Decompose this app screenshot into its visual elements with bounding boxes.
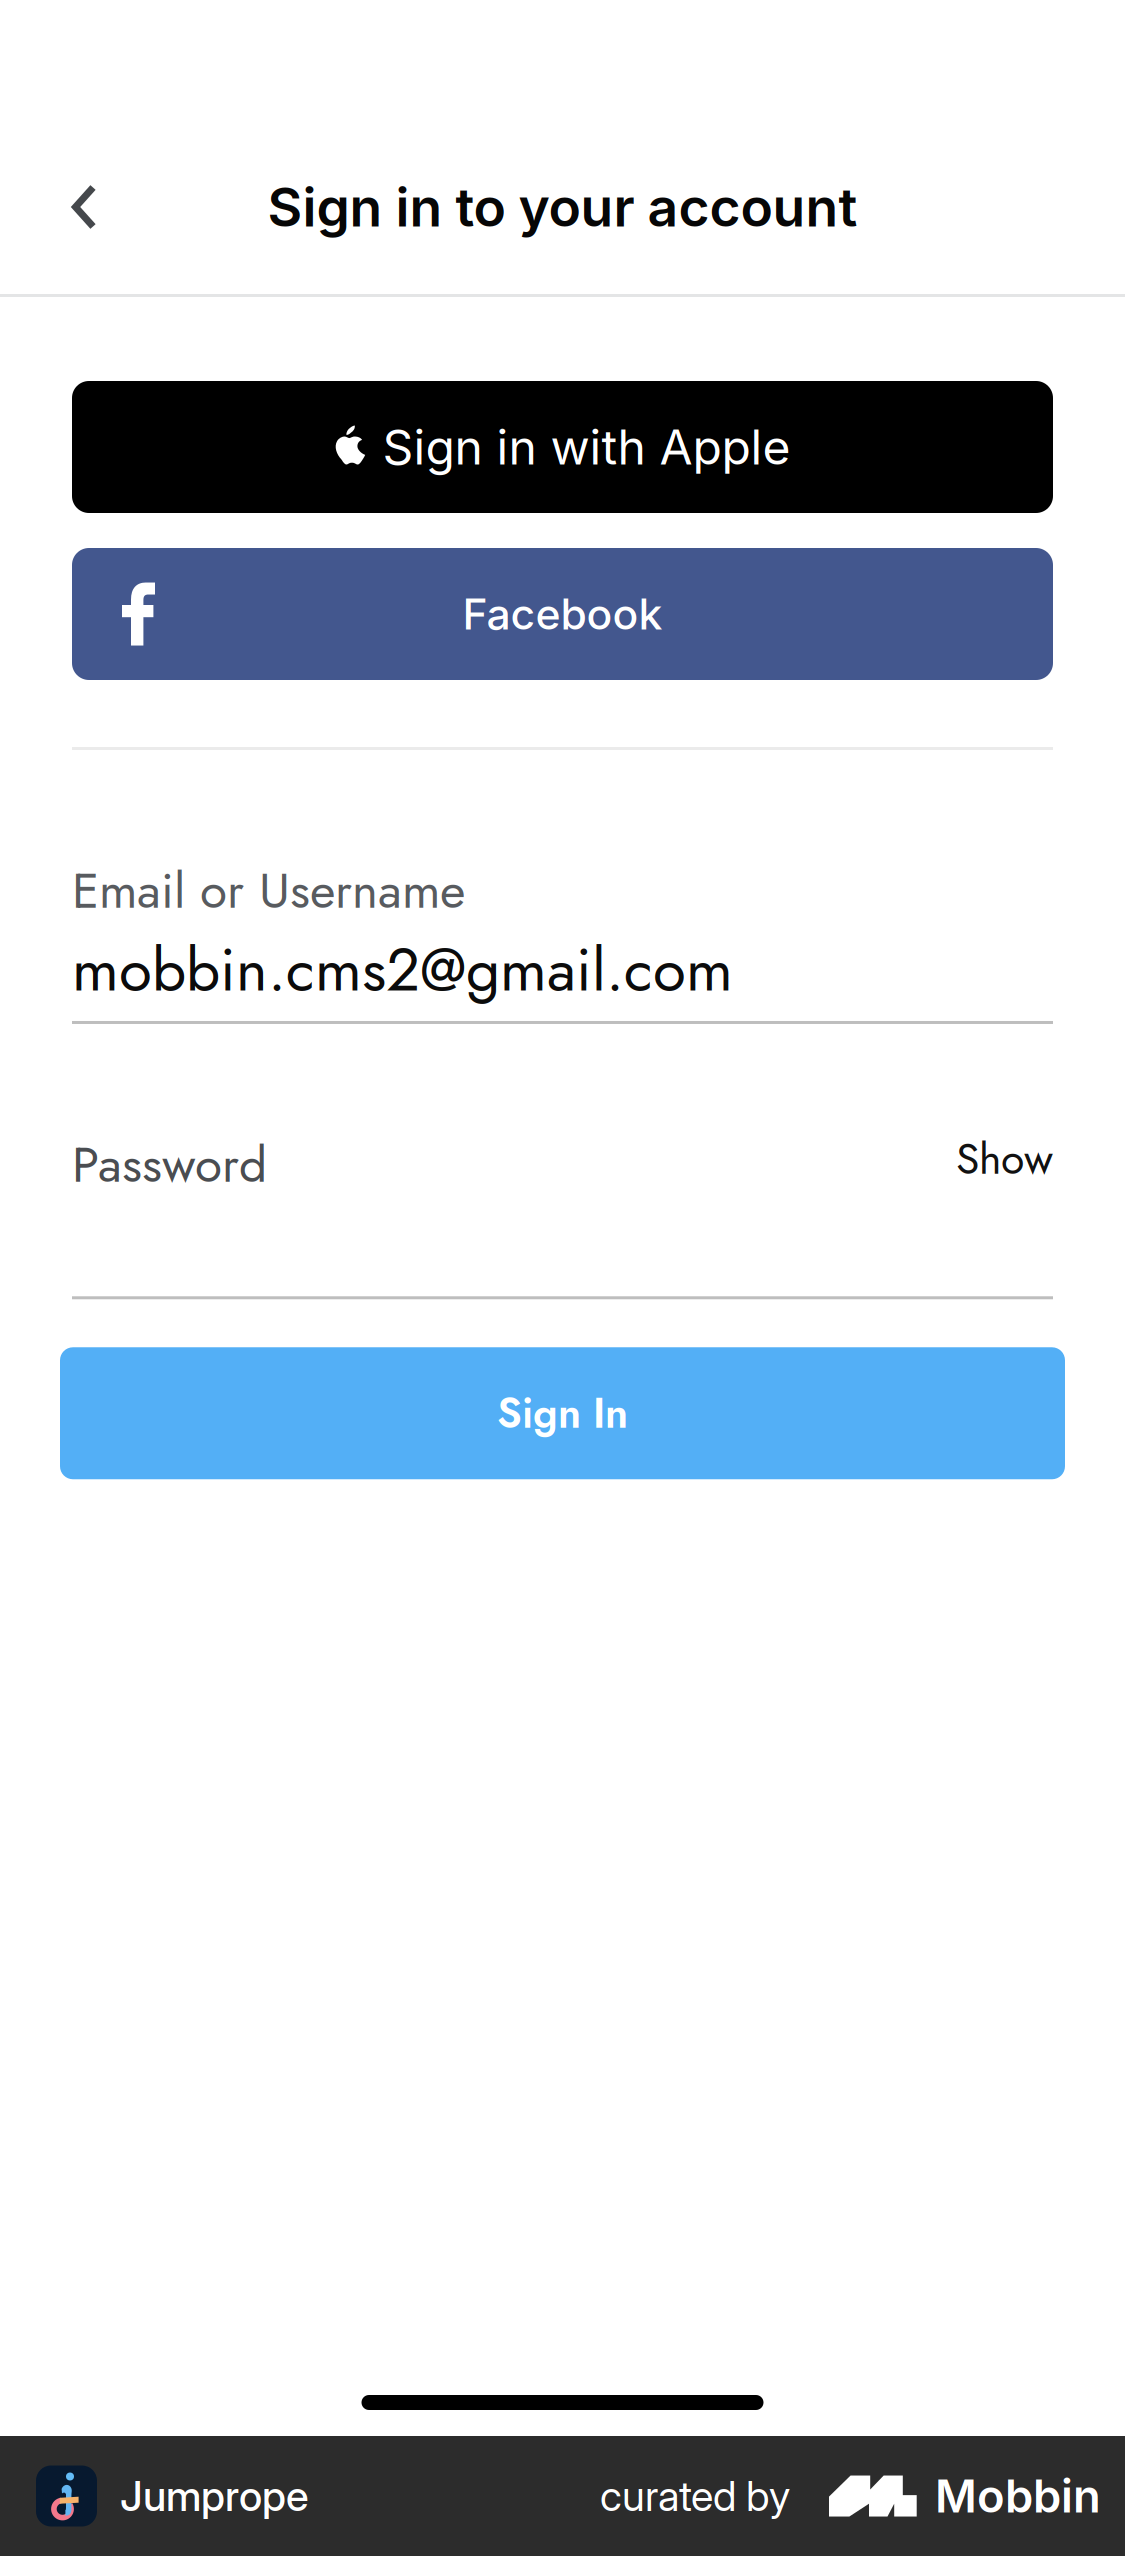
- button[interactable]: Sign In: [60, 1347, 1065, 1479]
- button[interactable]: Show: [956, 1136, 1053, 1198]
- staticText: Sign in with Apple: [382, 418, 790, 476]
- staticText: Jumprope: [120, 2471, 309, 2521]
- staticText: Password: [72, 1129, 267, 1200]
- button[interactable]: Sign in with Apple: [72, 381, 1053, 513]
- staticText: Facebook: [462, 588, 662, 640]
- button[interactable]: Facebook: [72, 548, 1053, 680]
- staticText: Sign In: [497, 1383, 628, 1443]
- staticText: Show: [956, 1128, 1053, 1190]
- button[interactable]: Back: [0, 163, 96, 263]
- staticText: curated by: [600, 2471, 790, 2521]
- staticText: Sign in to your account: [267, 175, 857, 239]
- staticText: Mobbin: [935, 2469, 1101, 2523]
- staticText: Email or Username: [72, 855, 465, 926]
- staticText: mobbin.cms2@gmail.com: [72, 926, 733, 1013]
